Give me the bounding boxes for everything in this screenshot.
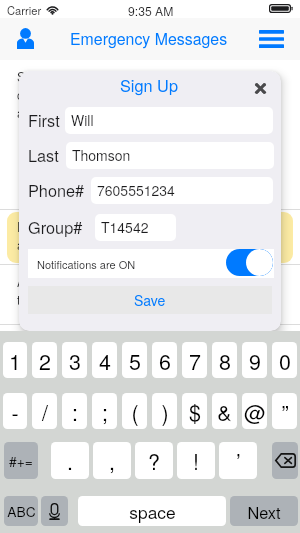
staticText: 2	[39, 345, 51, 376]
button[interactable]: !	[177, 442, 215, 479]
staticText: 6	[159, 345, 171, 376]
button[interactable]: Thomson	[66, 142, 274, 169]
button[interactable]: Severe thunderstorm watch issued for the…	[0, 60, 300, 210]
staticText: Will	[71, 110, 94, 130]
staticText: 1	[9, 345, 21, 376]
button[interactable]: Save	[28, 286, 272, 314]
staticText: Sign Up	[19, 73, 280, 96]
button[interactable]: 1	[3, 342, 27, 378]
button[interactable]: Notifications toggle	[226, 249, 273, 276]
button[interactable]: ABC	[4, 496, 38, 526]
button[interactable]: 7605551234	[91, 177, 273, 204]
staticText: 3	[69, 345, 81, 376]
staticText: 9:35 AM	[128, 2, 174, 19]
staticText: Severe thunderstorm watch issued for the…	[17, 68, 283, 122]
staticText: Phone#	[28, 178, 85, 201]
button[interactable]: /	[32, 393, 57, 429]
staticText: Carrier	[7, 2, 42, 18]
button[interactable]: All clear. Normal operations resume at 7…	[0, 265, 300, 325]
button[interactable]: Profile	[13, 22, 38, 55]
button[interactable]: &	[212, 393, 237, 429]
staticText: ’	[236, 445, 241, 476]
button[interactable]: 6	[152, 342, 177, 378]
button[interactable]: ,	[93, 442, 131, 479]
staticText: Last	[28, 143, 59, 166]
button[interactable]: Close	[249, 77, 271, 99]
staticText: 7605551234	[97, 180, 175, 200]
staticText: 4	[99, 345, 111, 376]
button[interactable]: T14542	[95, 214, 176, 241]
button[interactable]: Will	[65, 107, 273, 134]
staticText: @	[244, 396, 266, 427]
staticText: #+=	[9, 451, 33, 471]
staticText: ?	[148, 445, 160, 476]
button[interactable]: space	[78, 496, 226, 526]
staticText: (	[131, 396, 139, 427]
staticText: All clear. Normal operations resume at 7…	[17, 273, 283, 309]
staticText: $	[189, 396, 201, 427]
button[interactable]: ”	[272, 393, 297, 429]
staticText: -	[11, 396, 19, 427]
staticText: 8	[219, 345, 231, 376]
button[interactable]: ?	[135, 442, 173, 479]
staticText: Group#	[28, 215, 83, 238]
staticText: Please reply to confirm you are safe and…	[17, 218, 283, 254]
button[interactable]: 9	[242, 342, 267, 378]
button[interactable]: 0	[272, 342, 297, 378]
button[interactable]: Dictate	[41, 496, 68, 526]
staticText: )	[161, 396, 169, 427]
button[interactable]: (	[122, 393, 147, 429]
button[interactable]: :	[62, 393, 87, 429]
button[interactable]: -	[3, 393, 27, 429]
button[interactable]: Next	[230, 496, 298, 526]
staticText: /	[42, 396, 48, 427]
button[interactable]: @	[242, 393, 267, 429]
staticText: space	[129, 499, 176, 524]
button[interactable]: ’	[219, 442, 257, 479]
button[interactable]: Menu	[255, 22, 288, 55]
button[interactable]: $	[182, 393, 207, 429]
button[interactable]: 5	[122, 342, 147, 378]
button[interactable]: 8	[212, 342, 237, 378]
staticText: Save	[134, 290, 166, 310]
staticText: 9	[249, 345, 261, 376]
staticText: Next	[247, 500, 281, 523]
staticText: 5	[129, 345, 141, 376]
staticText: ,	[109, 445, 115, 476]
button[interactable]: ;	[92, 393, 117, 429]
staticText: .	[67, 445, 73, 476]
staticText: First	[28, 108, 60, 131]
button[interactable]: 3	[62, 342, 87, 378]
staticText: :	[72, 396, 78, 427]
staticText: !	[193, 445, 199, 476]
button[interactable]: 4	[92, 342, 117, 378]
staticText: &	[217, 396, 232, 427]
button[interactable]: 7	[182, 342, 207, 378]
staticText: ;	[102, 396, 108, 427]
button[interactable]: )	[152, 393, 177, 429]
button[interactable]: Backspace	[272, 442, 298, 479]
staticText: Notifications are ON	[37, 256, 136, 272]
staticText: Thomson	[72, 145, 131, 165]
button[interactable]: .	[51, 442, 89, 479]
staticText: ABC	[7, 501, 36, 521]
button[interactable]: Please reply to confirm you are safe and…	[0, 210, 300, 265]
button[interactable]: #+=	[4, 442, 38, 479]
staticText: Emergency Messages	[70, 27, 228, 50]
staticText: T14542	[101, 217, 149, 237]
button[interactable]: 2	[32, 342, 57, 378]
staticText: 7	[189, 345, 201, 376]
staticText: 0	[279, 345, 291, 376]
staticText: ”	[281, 396, 289, 427]
